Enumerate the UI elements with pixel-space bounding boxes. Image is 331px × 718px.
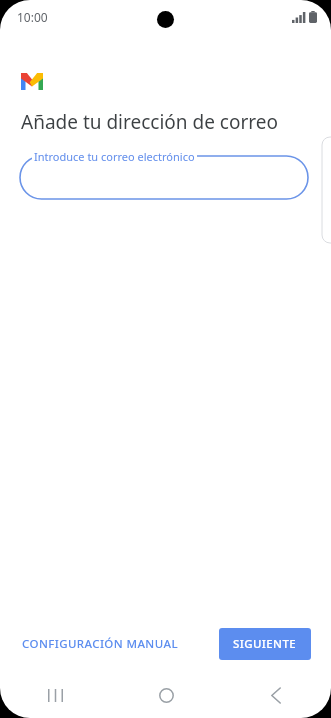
staticText: 10:00 [17, 9, 48, 25]
staticText: Introduce tu correo electrónico [34, 149, 195, 164]
staticText: CONFIGURACIÓN MANUAL [22, 636, 178, 652]
button[interactable]: Back [221, 672, 331, 718]
staticText: Añade tu dirección de correo [21, 109, 278, 135]
button[interactable]: SIGUIENTE [219, 628, 311, 660]
button[interactable]: Home [111, 672, 221, 718]
staticText: SIGUIENTE [233, 636, 297, 652]
button[interactable]: Introduce tu correo electrónico [20, 147, 308, 199]
button[interactable]: CONFIGURACIÓN MANUAL [10, 628, 190, 660]
button[interactable]: Recents [0, 672, 111, 718]
